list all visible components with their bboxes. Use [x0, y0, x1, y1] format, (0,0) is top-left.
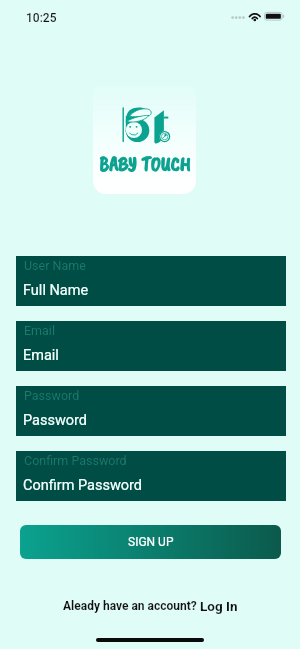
button[interactable]: Password	[16, 386, 286, 436]
staticText: Password	[23, 412, 88, 429]
button[interactable]: Confirm Password	[16, 451, 286, 501]
button[interactable]: SIGN UP	[20, 525, 281, 559]
button[interactable]: Aleady have an account?	[0, 592, 300, 614]
staticText: User Name	[24, 258, 86, 273]
staticText: SIGN UP	[128, 535, 174, 549]
staticText: Aleady have an account?	[63, 599, 200, 613]
staticText: Password	[24, 388, 80, 403]
staticText: Email	[23, 347, 59, 364]
button[interactable]: Email	[16, 321, 286, 371]
staticText: Full Name	[23, 282, 89, 299]
button[interactable]: User Name	[16, 256, 286, 306]
staticText: 10:25	[26, 11, 57, 25]
staticText: Email	[24, 323, 55, 338]
staticText: Confirm Password	[24, 453, 127, 468]
staticText: BABY TOUCH	[99, 152, 191, 177]
staticText: Log In	[200, 598, 238, 614]
staticText: Confirm Password	[23, 477, 143, 494]
